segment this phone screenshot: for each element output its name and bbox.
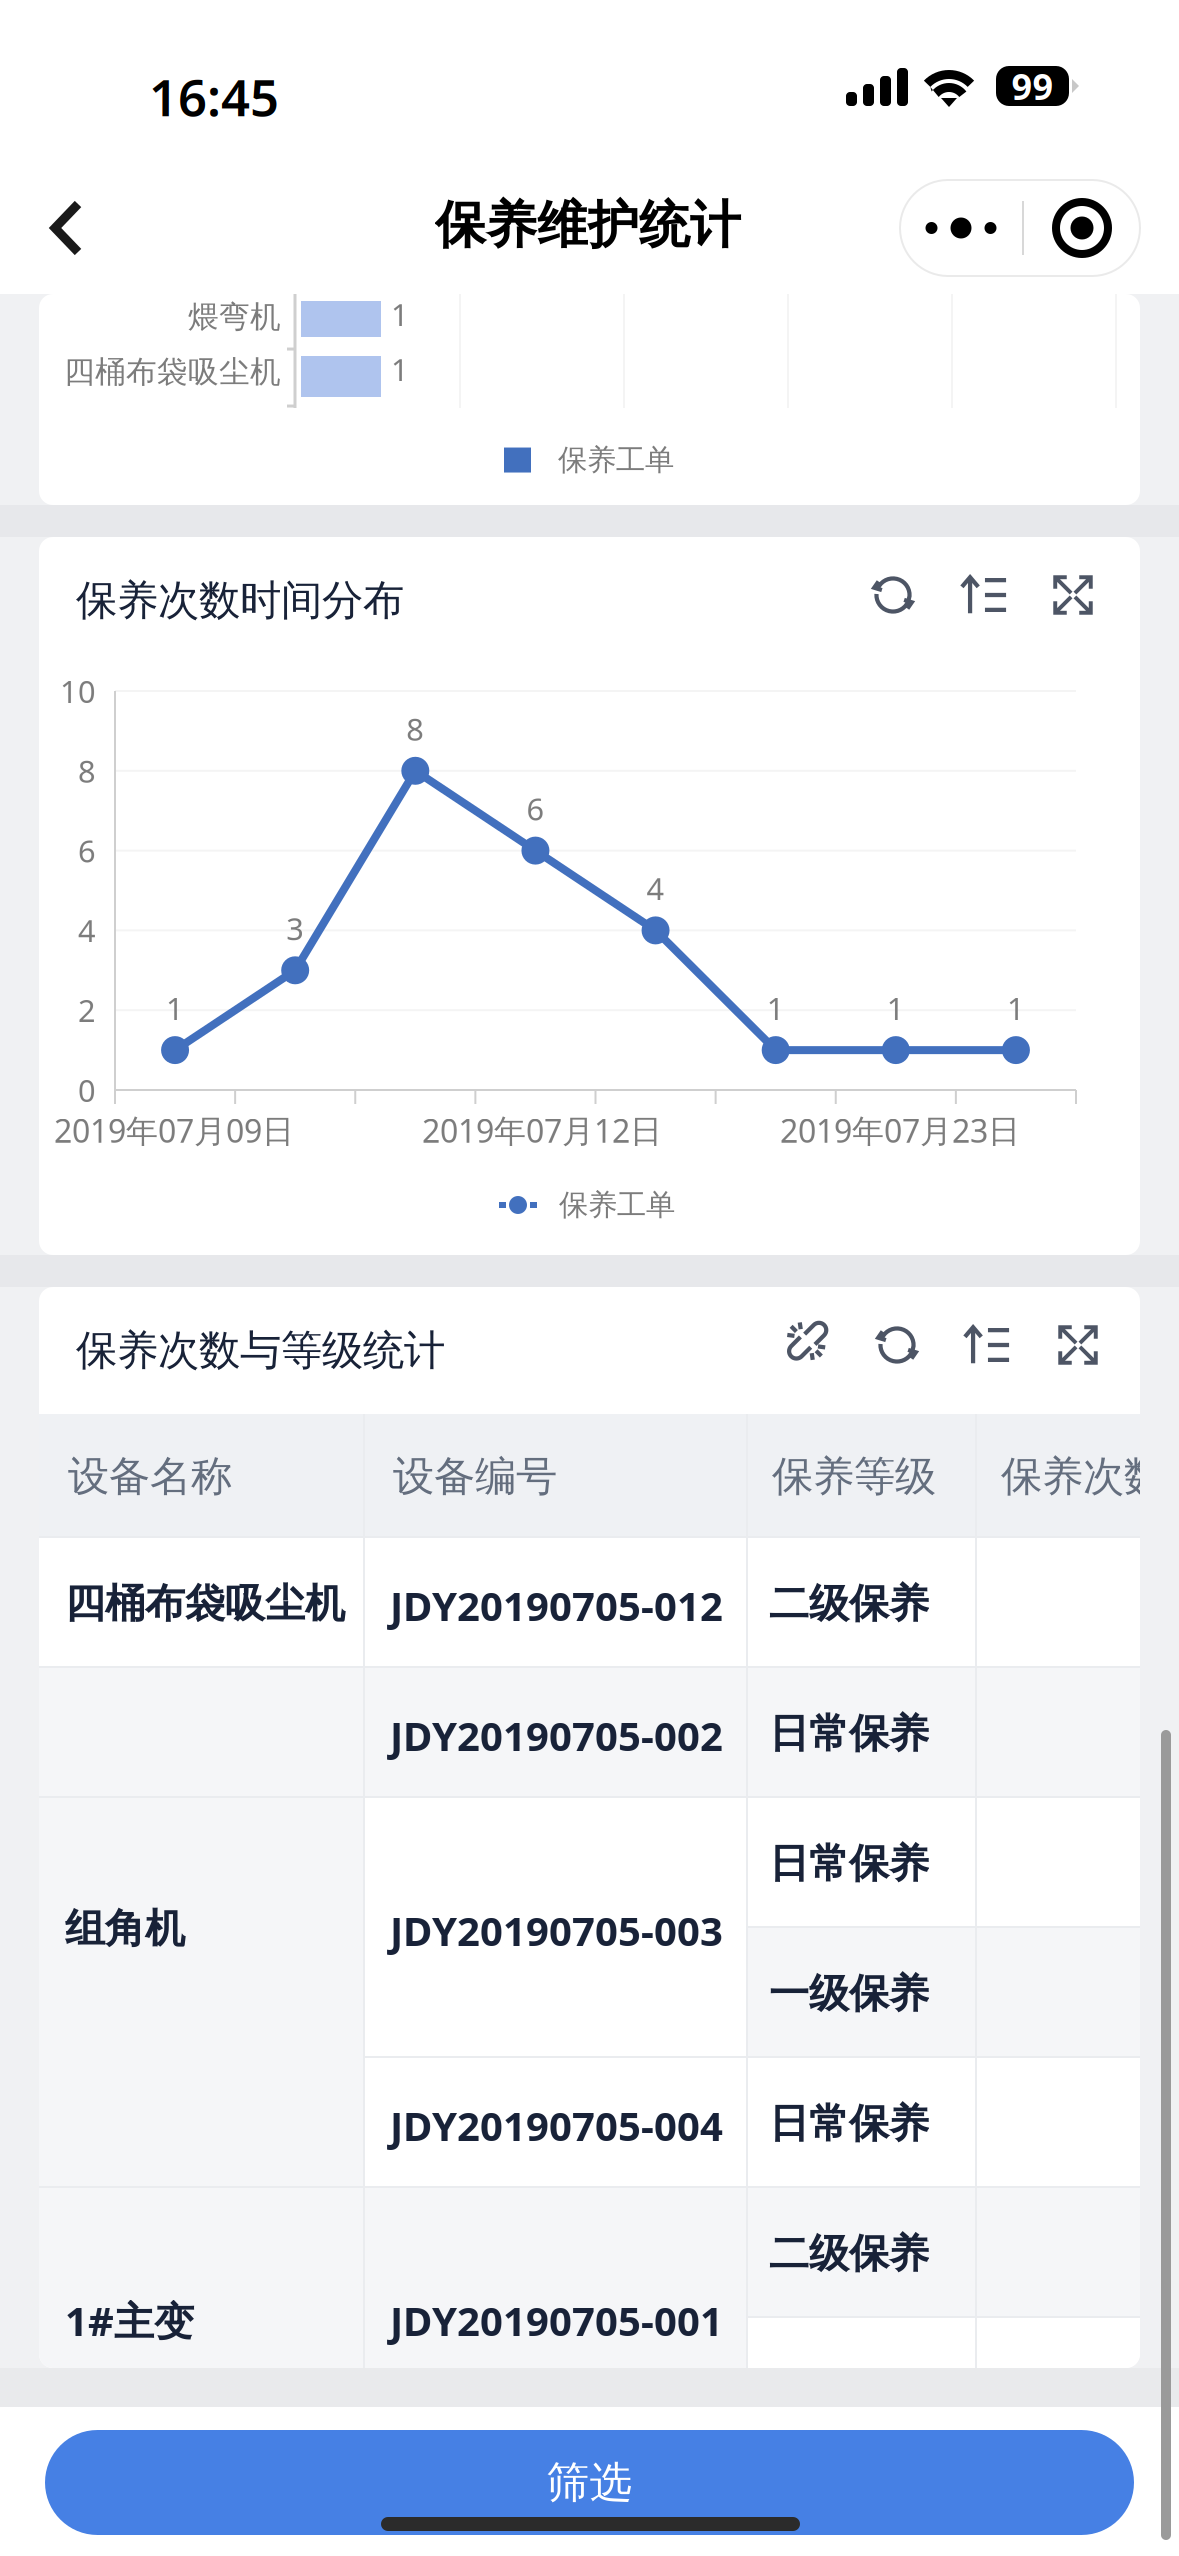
staticText: 2019年07月12日 (422, 1109, 662, 1151)
staticText: 保养次数时间分布 (76, 575, 404, 626)
button[interactable]: Sort (960, 571, 1008, 619)
staticText: 6 (526, 788, 544, 829)
staticText: 4 (78, 910, 96, 951)
staticText: JDY20190705-003 (390, 1904, 723, 1957)
staticText: JDY20190705-001 (390, 2294, 723, 2347)
staticText: 2 (78, 990, 96, 1030)
staticText: 设备编号 (393, 1451, 557, 1502)
staticText: 二级保养 (769, 2229, 929, 2278)
staticText: 10 (60, 671, 96, 711)
staticText: 1 (767, 988, 785, 1028)
staticText: 99 (1011, 62, 1053, 110)
staticText: 设备名称 (68, 1451, 232, 1502)
staticText: 4 (647, 868, 665, 909)
staticText: 保养等级 (772, 1451, 936, 1502)
staticText: 筛选 (546, 2456, 632, 2509)
staticText: JDY20190705-004 (390, 2099, 723, 2152)
staticText: 四桶布袋吸尘机 (65, 1579, 345, 1628)
staticText: 1 (391, 349, 409, 390)
staticText: 6 (78, 830, 96, 871)
staticText: 日常保养 (769, 1839, 929, 1888)
staticText: 日常保养 (769, 2099, 929, 2148)
staticText: 2019年07月23日 (780, 1109, 1020, 1151)
staticText: 保养工单 (558, 442, 674, 478)
staticText: 保养次数与等级统计 (76, 1325, 445, 1376)
button[interactable]: Back (17, 178, 117, 278)
staticText: 二级保养 (769, 1579, 929, 1628)
button[interactable]: Unlink (782, 1321, 830, 1369)
staticText: 8 (78, 750, 96, 791)
staticText: JDY20190705-002 (390, 1709, 723, 1762)
staticText: 保养工单 (559, 1187, 675, 1223)
staticText: 2019年07月09日 (54, 1109, 294, 1151)
staticText: 0 (78, 1070, 96, 1110)
staticText: 保养维护统计 (435, 194, 741, 256)
staticText: 16:45 (149, 63, 279, 130)
staticText: 1 (166, 988, 184, 1028)
staticText: 1#主变 (65, 2294, 194, 2347)
button[interactable]: Sort (963, 1321, 1011, 1369)
staticText: 1 (1007, 988, 1025, 1028)
staticText: 组角机 (65, 1904, 185, 1953)
button[interactable]: Refresh (873, 1321, 921, 1369)
staticText: 日常保养 (769, 1709, 929, 1758)
staticText: 煨弯机 (188, 298, 281, 336)
button[interactable]: Fullscreen (1049, 571, 1097, 619)
staticText: 3 (286, 908, 304, 949)
staticText: 1 (391, 294, 409, 335)
button[interactable]: Menu (900, 180, 1140, 276)
button[interactable]: Fullscreen (1054, 1321, 1102, 1369)
staticText: 8 (406, 708, 424, 749)
button[interactable]: 筛选 (45, 2430, 1134, 2535)
button[interactable]: Refresh (869, 571, 917, 619)
staticText: 四桶布袋吸尘机 (64, 353, 281, 391)
staticText: 1 (887, 988, 905, 1028)
staticText: JDY20190705-012 (390, 1579, 723, 1632)
staticText: 一级保养 (769, 1969, 929, 2018)
staticText: 保养次数 (1001, 1451, 1165, 1502)
